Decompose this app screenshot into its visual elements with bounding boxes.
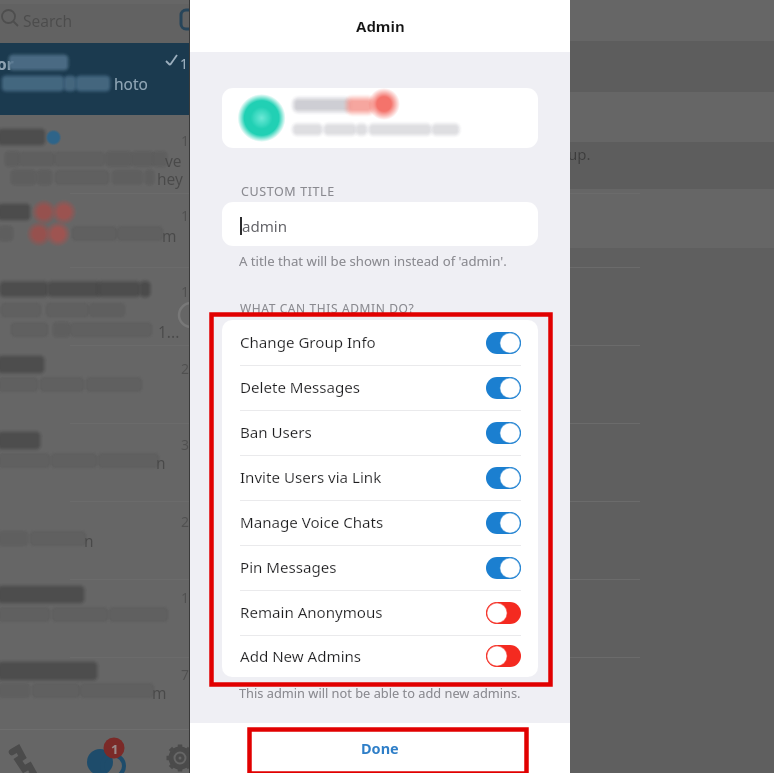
- button[interactable]: Manage Voice Chats: [222, 500, 538, 545]
- button[interactable]: Ban Users: [222, 410, 538, 455]
- staticText: n: [156, 452, 166, 473]
- button[interactable]: Invite Users via Link: [222, 455, 538, 500]
- staticText: This admin will not be able to add new a…: [239, 684, 521, 701]
- staticText: 1...: [158, 321, 180, 342]
- staticText: 1: [181, 588, 190, 607]
- other: Permission disabled: [486, 645, 521, 667]
- staticText: Invite Users via Link: [240, 467, 382, 488]
- staticText: 31/0: [181, 435, 211, 454]
- staticText: 23/1: [181, 512, 211, 531]
- staticText: 27/0: [181, 359, 211, 378]
- staticText: 11: [181, 131, 198, 150]
- button[interactable]: admin: [222, 202, 538, 246]
- staticText: Search: [23, 10, 73, 31]
- staticText: Admin: [356, 16, 405, 36]
- button[interactable]: Search: [0, 4, 570, 43]
- button[interactable]: Done: [190, 723, 570, 773]
- staticText: Manage Voice Chats: [240, 512, 384, 533]
- button[interactable]: Change Group Info: [222, 320, 538, 365]
- button[interactable]: Delete Messages: [222, 365, 538, 410]
- staticText: hoto: [114, 73, 148, 94]
- staticText: 7/0: [181, 665, 203, 684]
- staticText: Add New Admins: [240, 646, 362, 667]
- other: Permission enabled: [486, 467, 521, 489]
- staticText: Pin Messages: [240, 557, 337, 578]
- button[interactable]: Admin: [190, 0, 570, 52]
- other: Permission disabled: [486, 602, 521, 624]
- staticText: CUSTOM TITLE: [241, 183, 335, 200]
- other: Permission enabled: [486, 422, 521, 444]
- button[interactable]: Chats, 1 unread: [63, 733, 126, 773]
- staticText: 13: [181, 282, 198, 301]
- staticText: 1: [111, 740, 119, 758]
- staticText: m: [152, 682, 167, 703]
- button[interactable]: [222, 88, 538, 148]
- staticText: n: [84, 530, 94, 551]
- staticText: WHAT CAN THIS ADMIN DO?: [240, 300, 415, 316]
- staticText: Done: [361, 738, 399, 758]
- staticText: up.: [568, 144, 591, 164]
- staticText: Delete Messages: [240, 377, 360, 398]
- staticText: admin: [242, 216, 288, 237]
- staticText: Remain Anonymous: [240, 602, 383, 623]
- other: Permission enabled: [486, 512, 521, 534]
- staticText: or: [0, 53, 14, 74]
- staticText: m: [162, 225, 177, 246]
- button[interactable]: Remain Anonymous: [222, 590, 538, 635]
- button[interactable]: Pin Messages: [222, 545, 538, 590]
- staticText: 15: [181, 206, 198, 225]
- other: Permission enabled: [486, 332, 521, 354]
- other: Permission enabled: [486, 377, 521, 399]
- other: Permission enabled: [486, 557, 521, 579]
- staticText: 11: [180, 54, 197, 73]
- staticText: Ban Users: [240, 422, 312, 443]
- staticText: ve: [165, 150, 182, 171]
- button[interactable]: Settings: [126, 733, 190, 773]
- button[interactable]: Calls: [0, 733, 63, 773]
- button[interactable]: Add New Admins: [222, 635, 538, 677]
- staticText: A title that will be shown instead of 'a…: [239, 252, 507, 270]
- staticText: Change Group Info: [240, 332, 376, 353]
- staticText: hey: [157, 168, 183, 189]
